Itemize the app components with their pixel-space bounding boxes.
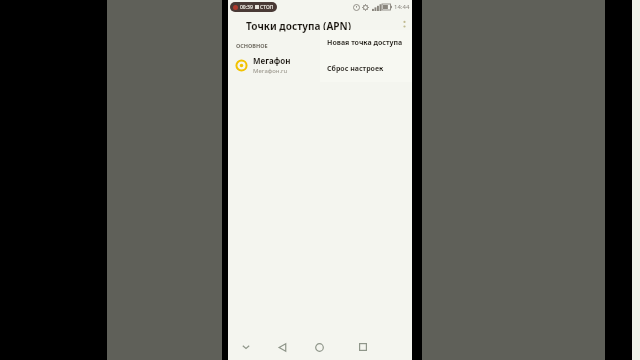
button[interactable]: Новая точка доступа [320, 30, 412, 56]
button[interactable]: Back [273, 338, 291, 356]
button[interactable]: Hide keyboard [238, 339, 254, 355]
button[interactable]: Сброс настроек [320, 56, 412, 82]
staticText: Новая точка доступа [327, 38, 403, 48]
staticText: ОСНОВНОЕ [236, 42, 268, 49]
button[interactable]: Home [310, 338, 328, 356]
staticText: СТОП [260, 4, 274, 11]
button[interactable]: More options [396, 14, 412, 38]
staticText: Точки доступа (APN) [246, 19, 352, 33]
button[interactable]: Recent apps [354, 338, 372, 356]
staticText: Сброс настроек [327, 64, 384, 74]
staticText: 14:44 [394, 3, 410, 11]
button[interactable]: Мегафон [228, 52, 412, 78]
staticText: Мегафон.ru [253, 67, 288, 75]
staticText: Мегафон [253, 55, 291, 66]
staticText: 00:39 [240, 4, 253, 11]
